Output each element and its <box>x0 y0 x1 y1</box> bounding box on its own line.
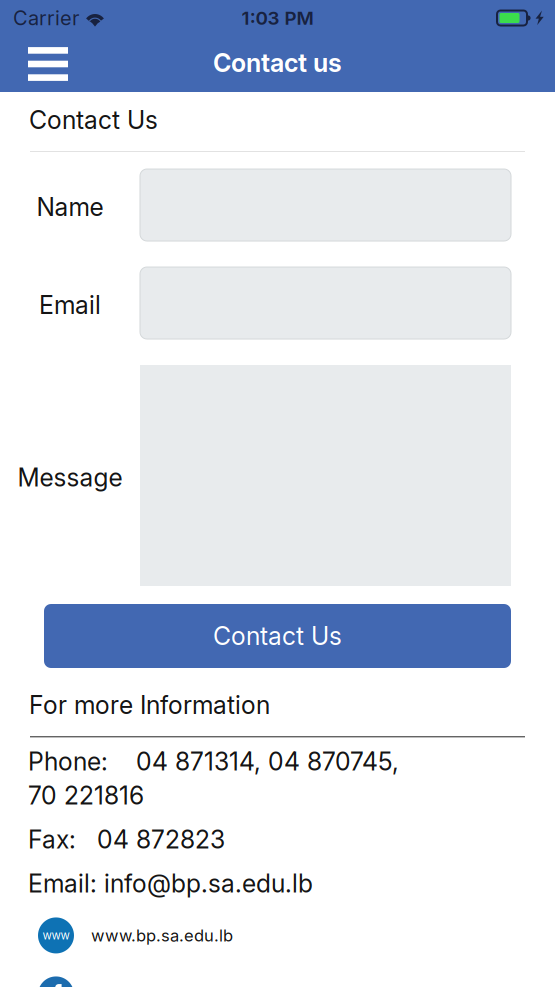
staticText: Contact Us <box>29 105 158 135</box>
staticText: Phone: 04 871314, 04 870745, <box>28 746 399 776</box>
staticText: 1:03 PM <box>241 7 313 29</box>
staticText: 70 221816 <box>28 780 144 810</box>
button[interactable]: Bureau Pedagogique Official Page <box>0 976 555 987</box>
staticText: Email <box>39 290 101 320</box>
staticText: Name <box>36 192 103 222</box>
staticText: www.bp.sa.edu.lb <box>91 925 233 945</box>
staticText: Carrier <box>13 6 79 30</box>
staticText: For more Information <box>29 690 270 720</box>
staticText: Fax: 04 872823 <box>28 824 225 854</box>
button[interactable]: Menu <box>6 40 90 88</box>
button[interactable]: Contact Us <box>44 604 511 668</box>
button[interactable]: www <box>0 917 555 953</box>
staticText: Email: info@bp.sa.edu.lb <box>28 868 313 898</box>
staticText: www <box>42 928 69 942</box>
staticText: Message <box>17 462 122 492</box>
staticText: Contact Us <box>213 621 342 651</box>
staticText: Contact us <box>213 48 342 78</box>
